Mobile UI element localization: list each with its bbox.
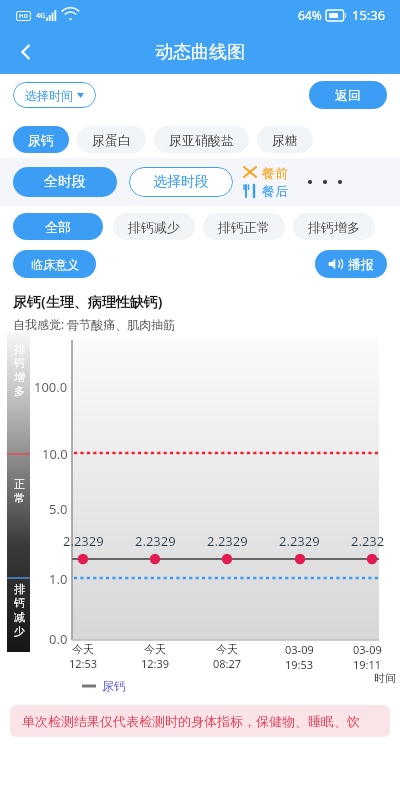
staticText: 排钙正常 [218, 219, 270, 235]
button[interactable]: 全时段 [13, 167, 117, 197]
staticText: 今天 [216, 642, 238, 656]
staticText: 今天 [144, 642, 166, 656]
staticText: 少 [14, 624, 25, 638]
staticText: 尿糖 [272, 132, 298, 148]
staticText: 播报 [348, 256, 374, 272]
staticText: 今天 [72, 642, 94, 656]
staticText: 正 [14, 477, 25, 491]
staticText: 03-09 [285, 642, 314, 657]
staticText: 临床意义 [31, 257, 79, 272]
staticText: 2.2329 [279, 532, 320, 550]
staticText: 19:11 [353, 657, 382, 672]
staticText: 自我感觉: 骨节酸痛、肌肉抽筋 [13, 316, 176, 332]
button[interactable]: 排钙正常 [203, 213, 285, 240]
staticText: 5.0 [49, 500, 68, 518]
staticText: 2.2329 [63, 532, 104, 550]
staticText: 100.0 [34, 378, 68, 396]
button[interactable]: 尿蛋白 [77, 126, 146, 153]
button[interactable]: 临床意义 [13, 250, 96, 278]
staticText: 10.0 [42, 445, 68, 463]
staticText: 19:53 [285, 657, 314, 672]
button[interactable]: 尿糖 [257, 126, 313, 153]
button[interactable]: 选择时段 [129, 167, 233, 197]
staticText: 动态曲线图 [155, 41, 245, 64]
staticText: 时间 [374, 671, 396, 685]
staticText: 选择时间 [25, 88, 73, 103]
staticText: 排 [14, 342, 25, 356]
staticText: 尿钙(生理、病理性缺钙) [13, 292, 163, 311]
staticText: 钙 [14, 356, 25, 370]
button[interactable]: Back [6, 32, 46, 72]
button[interactable]: 排钙减少 [113, 213, 195, 240]
staticText: 64% [298, 7, 322, 23]
button[interactable]: 排钙增多 [293, 213, 375, 240]
staticText: 08:27 [213, 656, 242, 671]
button[interactable]: 选择时间 [13, 82, 96, 108]
staticText: 选择时段 [153, 173, 209, 191]
staticText: 排钙减少 [128, 219, 180, 235]
staticText: 尿亚硝酸盐 [169, 132, 234, 148]
staticText: 全部 [45, 219, 71, 235]
staticText: 全时段 [44, 173, 86, 191]
button[interactable]: 尿亚硝酸盐 [154, 126, 249, 153]
staticText: 多 [14, 384, 25, 398]
staticText: 0.0 [49, 630, 68, 648]
staticText: 2.232 [351, 532, 385, 550]
staticText: 1.0 [49, 570, 68, 588]
staticText: 单次检测结果仅代表检测时的身体指标，保健物、睡眠、饮 [22, 713, 360, 729]
staticText: 减 [14, 610, 25, 624]
staticText: 15:36 [352, 6, 386, 24]
staticText: 12:39 [141, 656, 170, 671]
button[interactable]: 播报 [315, 250, 387, 278]
button[interactable]: 尿钙 [13, 126, 69, 153]
staticText: 排钙增多 [308, 219, 360, 235]
staticText: 钙 [14, 596, 25, 610]
staticText: 增 [14, 370, 25, 384]
staticText: 常 [14, 491, 25, 505]
button[interactable]: 返回 [309, 81, 387, 109]
staticText: 尿钙 [102, 678, 126, 693]
staticText: 2.2329 [135, 532, 176, 550]
staticText: 尿蛋白 [92, 132, 131, 148]
staticText: 12:53 [69, 656, 98, 671]
staticText: 尿钙 [28, 132, 54, 148]
staticText: 4G [36, 11, 46, 21]
staticText: HD [19, 12, 28, 20]
staticText: 排 [14, 582, 25, 596]
staticText: 03-09 [353, 642, 382, 657]
staticText: 餐后 [262, 183, 288, 199]
staticText: 返回 [335, 87, 361, 103]
button[interactable]: 全部 [13, 213, 103, 240]
button[interactable]: More [304, 170, 346, 194]
staticText: 2.2329 [207, 532, 248, 550]
staticText: 餐前 [262, 165, 288, 181]
